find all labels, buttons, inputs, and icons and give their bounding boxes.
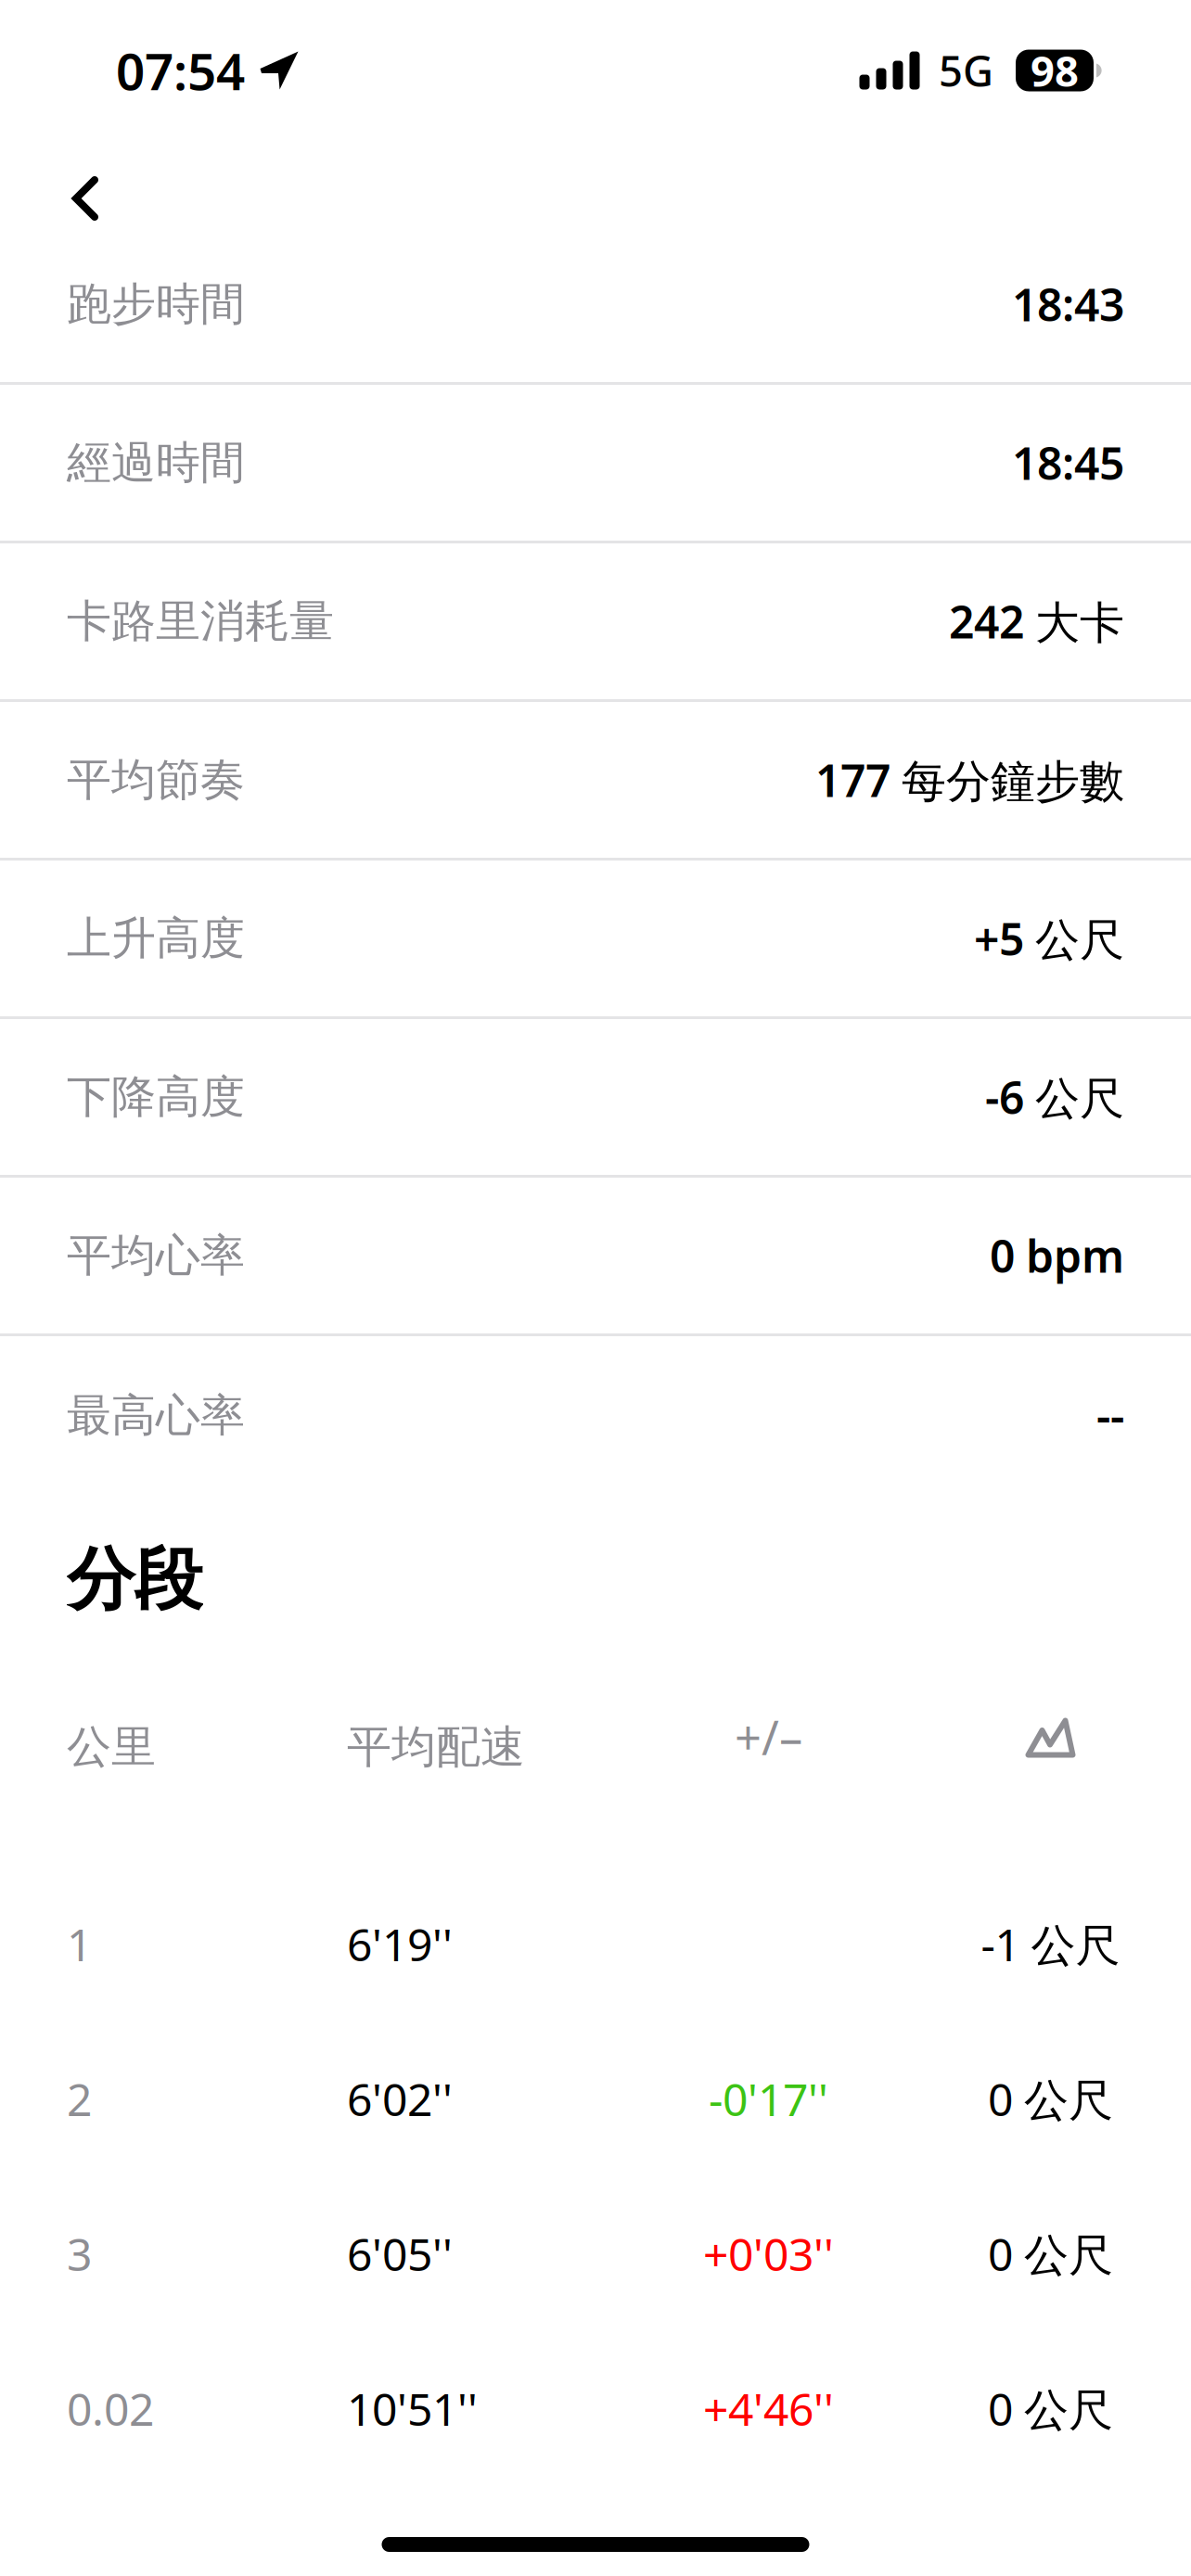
staticText: 跑步時間 [67,277,245,332]
staticText: 最高心率 [67,1388,245,1443]
staticText: 0 公尺 [988,2069,1113,2128]
staticText: 平均配速 [347,1720,525,1774]
staticText: 2 [67,2069,92,2128]
staticText: +/– [735,1706,802,1768]
staticText: -- [1096,1386,1124,1445]
staticText: 0 公尺 [988,2224,1113,2283]
staticText: 平均心率 [67,1228,245,1283]
staticText: 98 [1031,43,1079,98]
staticText: +4'46'' [703,2379,834,2438]
staticText: 07:54 [116,37,245,104]
staticText: 10'51'' [347,2379,478,2438]
staticText: 1 [67,1914,92,1974]
staticText: -0'17'' [709,2069,828,2128]
staticText: 卡路里消耗量 [67,594,334,649]
staticText: 3 [67,2224,92,2283]
staticText: 6'02'' [347,2069,453,2128]
staticText: 6'05'' [347,2224,453,2283]
staticText: 下降高度 [67,1070,245,1124]
staticText: 平均節奏 [67,752,245,807]
staticText: 0 bpm [990,1226,1124,1285]
staticText: 18:43 [1012,275,1124,334]
staticText: +5 公尺 [974,909,1124,968]
staticText: +0'03'' [703,2224,834,2283]
staticText: 242 大卡 [949,592,1124,651]
button[interactable]: Back [41,89,130,243]
staticText: 5G [939,43,993,98]
staticText: 177 每分鐘步數 [815,750,1124,809]
staticText: 0.02 [67,2379,154,2438]
staticText: 分段 [67,1538,202,1621]
staticText: 公里 [67,1720,156,1774]
staticText: 經過時間 [67,435,245,490]
staticText: -6 公尺 [985,1067,1124,1126]
staticText: 18:45 [1012,433,1124,492]
staticText: 上升高度 [67,911,245,966]
staticText: 0 公尺 [988,2379,1113,2438]
staticText: 6'19'' [347,1914,453,1974]
staticText: -1 公尺 [981,1914,1120,1974]
